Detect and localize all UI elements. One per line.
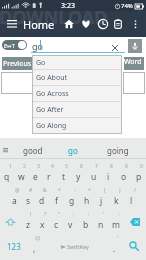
staticText: 6: [80, 163, 83, 170]
button[interactable]: Go About: [32, 70, 122, 86]
button[interactable]: ': [93, 210, 108, 234]
staticText: i: [107, 171, 110, 183]
staticText: .: [113, 243, 116, 255]
button[interactable]: 3: [28, 162, 42, 186]
staticText: c: [54, 219, 59, 231]
button[interactable]: :: [78, 210, 93, 234]
staticText: k: [114, 195, 119, 207]
staticText: 3:23: [61, 1, 75, 11]
button[interactable]: !: [21, 210, 35, 234]
staticText: h: [84, 195, 90, 207]
staticText: !: [30, 211, 32, 218]
button[interactable]: (: [94, 186, 109, 210]
staticText: 7: [95, 163, 98, 170]
button[interactable]: Go Across: [32, 86, 122, 102]
button[interactable]: Clear query: [109, 42, 121, 54]
staticText: -: [118, 211, 120, 218]
staticText: /: [134, 187, 136, 194]
staticText: Go After: [36, 105, 64, 115]
staticText: &: [43, 187, 47, 194]
button[interactable]: 5: [56, 162, 71, 186]
staticText: 5: [65, 163, 68, 170]
staticText: l: [130, 195, 133, 207]
button[interactable]: Home: [62, 17, 76, 31]
button[interactable]: Shift: [0, 210, 21, 234]
button[interactable]: good: [14, 138, 52, 162]
staticText: m: [112, 219, 120, 231]
button[interactable]: 2: [14, 162, 28, 186]
button[interactable]: Backspace: [123, 210, 146, 234]
staticText: q: [4, 171, 10, 183]
staticText: e: [33, 171, 38, 183]
staticText: s: [26, 195, 31, 207]
staticText: b: [83, 219, 89, 231]
staticText: *: [58, 187, 61, 194]
staticText: Go About: [36, 73, 68, 83]
button[interactable]: 6: [71, 162, 86, 186]
staticText: 3: [37, 163, 40, 170]
staticText: Previous: [3, 59, 32, 69]
button[interactable]: Previous: [2, 57, 32, 70]
staticText: Go Across: [36, 89, 69, 99]
staticText: DOWNLOAD APK: [0, 5, 145, 30]
button[interactable]: going: [99, 138, 137, 162]
button[interactable]: ‘: [107, 234, 122, 258]
staticText: 8: [110, 163, 113, 170]
button[interactable]: 123: [0, 234, 27, 258]
button[interactable]: 8: [101, 162, 116, 186]
button[interactable]: Voice search: [128, 39, 142, 53]
staticText: 123: [7, 241, 21, 252]
button[interactable]: ?: [35, 210, 49, 234]
staticText: Go: [36, 58, 46, 68]
staticText: ?: [44, 211, 47, 218]
staticText: ,: [33, 243, 36, 255]
button[interactable]: ;: [63, 210, 78, 234]
staticText: n: [98, 219, 104, 231]
button[interactable]: E↔T: [2, 40, 27, 50]
staticText: 1: [9, 163, 12, 170]
staticText: ;: [73, 211, 75, 218]
staticText: 4: [51, 163, 54, 170]
button[interactable]: ): [109, 186, 124, 210]
staticText: j: [100, 195, 103, 207]
button[interactable]: /: [124, 186, 139, 210]
button[interactable]: More options: [129, 18, 141, 30]
staticText: 2: [23, 163, 26, 170]
button[interactable]: *: [49, 186, 64, 210]
button[interactable]: Keyboard menu: [0, 144, 11, 155]
staticText: ‘: [117, 235, 118, 242]
button[interactable]: &: [35, 186, 49, 210]
button[interactable]: 7: [86, 162, 101, 186]
staticText: good: [23, 145, 43, 156]
staticText: w: [18, 171, 25, 183]
button[interactable]: +: [79, 186, 94, 210]
button[interactable]: Space: [42, 234, 107, 258]
staticText: “: [58, 211, 60, 218]
staticText: u: [91, 171, 97, 183]
staticText: E↔T: [4, 42, 15, 49]
button[interactable]: -: [64, 186, 79, 210]
button[interactable]: 4: [42, 162, 56, 186]
staticText: go: [32, 40, 43, 52]
button[interactable]: @: [7, 186, 21, 210]
button[interactable]: “: [49, 210, 63, 234]
button[interactable]: 9: [116, 162, 131, 186]
button[interactable]: Open navigation menu: [4, 16, 20, 32]
button[interactable]: #: [21, 186, 35, 210]
button[interactable]: Clipboard: [111, 17, 125, 31]
button[interactable]: go: [54, 138, 92, 162]
button[interactable]: ☺: [27, 234, 42, 258]
button[interactable]: Words: [124, 57, 144, 70]
button[interactable]: Go Along: [32, 118, 122, 134]
button[interactable]: Favorites: [79, 17, 93, 31]
button[interactable]: -: [108, 210, 123, 234]
button[interactable]: Go After: [32, 102, 122, 118]
staticText: p: [136, 171, 142, 183]
button[interactable]: Search: [122, 234, 146, 258]
button[interactable]: 1: [0, 162, 14, 186]
button[interactable]: Go: [32, 55, 122, 70]
button[interactable]: History: [96, 17, 110, 31]
staticText: x: [40, 219, 45, 231]
button[interactable]: 0: [131, 162, 146, 186]
staticText: 9: [125, 163, 128, 170]
